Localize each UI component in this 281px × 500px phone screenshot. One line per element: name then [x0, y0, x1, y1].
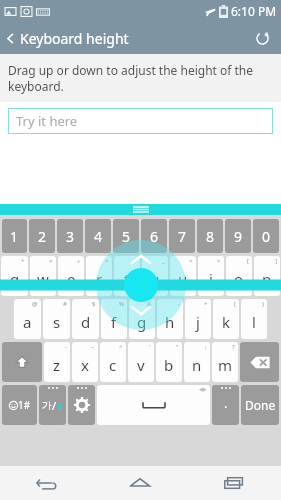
button[interactable]: ^ [100, 342, 126, 382]
staticText: 2 [38, 227, 47, 246]
button[interactable]: ' [128, 342, 154, 382]
button[interactable]: + [185, 299, 211, 339]
staticText: j [196, 312, 200, 332]
button[interactable]: _ [142, 256, 168, 296]
button[interactable]: % [101, 299, 127, 339]
button[interactable]: 3 [57, 219, 83, 253]
staticText: ; [205, 343, 207, 351]
staticText: ◀▶ [199, 386, 207, 392]
staticText: a [57, 399, 63, 413]
button[interactable]: Reset [249, 25, 275, 51]
button[interactable]: # [43, 299, 70, 339]
button[interactable]: × [30, 256, 56, 296]
staticText: Try it here [16, 112, 78, 130]
staticText: 8 [206, 227, 215, 246]
button[interactable]: Symbols and emoji [2, 385, 37, 425]
button[interactable]: Keyboard height [0, 25, 137, 52]
staticText: / [134, 257, 137, 265]
staticText: 0 [262, 227, 271, 246]
button[interactable]: Recent apps [187, 466, 281, 500]
button[interactable]: ? [212, 342, 238, 382]
button[interactable]: 7 [169, 219, 195, 253]
staticText: - [178, 300, 180, 308]
button[interactable]: $ [72, 299, 99, 339]
button[interactable]: < [170, 256, 196, 296]
staticText: + [21, 257, 25, 265]
button[interactable]: ; [184, 342, 210, 382]
staticText: . [224, 394, 228, 412]
staticText: r [96, 269, 103, 289]
staticText: d [81, 312, 91, 332]
staticText: 1# [18, 398, 31, 412]
button[interactable]: Period [212, 385, 239, 425]
button[interactable]: [ [226, 256, 252, 296]
staticText: / [52, 398, 57, 413]
button[interactable]: ] [254, 256, 280, 296]
button[interactable]: Try it here [8, 108, 273, 134]
button[interactable]: " [156, 342, 182, 382]
button[interactable]: 6 [141, 219, 167, 253]
staticText: w [37, 269, 49, 289]
button[interactable]: 1 [2, 219, 27, 253]
button[interactable]: Done [241, 385, 279, 425]
button[interactable]: - [44, 342, 70, 382]
button[interactable]: Drag handle [0, 204, 281, 215]
staticText: c [109, 355, 117, 375]
button[interactable]: 8 [197, 219, 223, 253]
staticText: 7 [178, 227, 187, 246]
staticText: ÷ [77, 257, 81, 265]
button[interactable]: Change language [39, 385, 66, 425]
staticText: 1 [10, 227, 19, 246]
button[interactable]: Back [0, 466, 93, 500]
staticText: $ [92, 300, 96, 308]
staticText: 5 [122, 227, 131, 246]
staticText: Drag up or down to adjust the height of … [8, 62, 265, 94]
button[interactable]: ( [213, 299, 239, 339]
staticText: g [137, 312, 147, 332]
staticText: 4 [94, 227, 103, 246]
staticText: 9 [234, 227, 243, 246]
staticText: 3 [66, 227, 75, 246]
staticText: v [137, 355, 145, 375]
staticText: Done [245, 397, 276, 413]
staticText: = [105, 257, 109, 265]
button[interactable]: ~ [72, 342, 98, 382]
button[interactable]: = [86, 256, 112, 296]
staticText: ] [275, 257, 277, 265]
staticText: i [209, 269, 213, 289]
button[interactable]: > [198, 256, 224, 296]
staticText: ? [232, 343, 235, 351]
button[interactable]: 4 [85, 219, 111, 253]
staticText: " [176, 343, 179, 351]
staticText: ^ [119, 343, 123, 351]
button[interactable]: 5 [113, 219, 139, 253]
button[interactable]: ÷ [58, 256, 84, 296]
staticText: f [111, 312, 117, 332]
button[interactable]: Home [93, 466, 187, 500]
staticText: @ [32, 300, 38, 308]
staticText: & [147, 300, 152, 308]
button[interactable]: - [157, 299, 183, 339]
button[interactable]: ) [241, 299, 267, 339]
staticText: 가 [42, 399, 52, 412]
button[interactable]: / [114, 256, 140, 296]
staticText: 6 [150, 227, 159, 246]
staticText: 6:10 PM [231, 3, 277, 19]
button[interactable]: 2 [29, 219, 55, 253]
staticText: a [23, 312, 32, 332]
button[interactable]: Delete [240, 342, 279, 382]
staticText: p [262, 269, 272, 289]
staticText: n [192, 355, 202, 375]
button[interactable]: Settings [68, 385, 95, 425]
staticText: u [178, 269, 188, 289]
staticText: t [124, 269, 130, 289]
button[interactable]: 0 [253, 219, 279, 253]
button[interactable]: 9 [225, 219, 251, 253]
button[interactable]: Shift [2, 342, 42, 382]
button[interactable]: Space [97, 385, 210, 425]
button[interactable]: & [129, 299, 155, 339]
button[interactable]: @ [14, 299, 41, 339]
button[interactable]: + [1, 256, 28, 296]
staticText: y [151, 269, 159, 289]
staticText: e [67, 269, 76, 289]
